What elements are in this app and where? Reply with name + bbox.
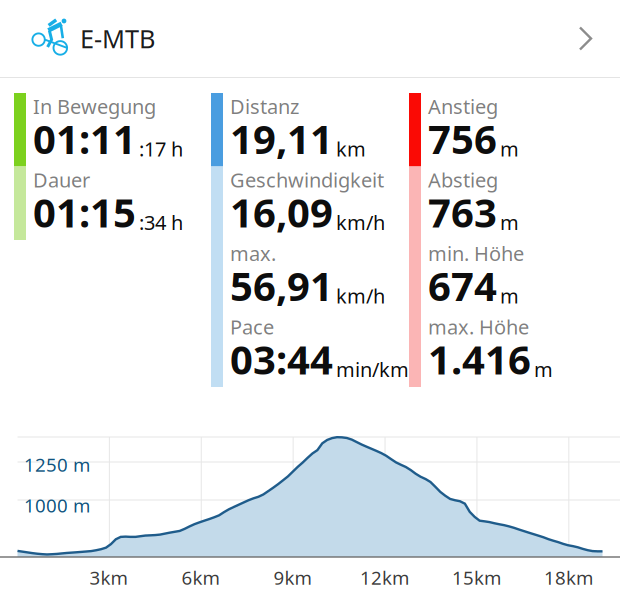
staticText: Anstieg <box>428 93 498 120</box>
button[interactable]: E-MTB <box>0 0 620 77</box>
staticText: 756 <box>428 112 497 165</box>
staticText: max. <box>230 240 276 267</box>
staticText: 01:11 <box>33 112 136 165</box>
staticText: Pace <box>230 313 274 340</box>
staticText: Abstieg <box>428 166 498 193</box>
staticText: 1250 m <box>24 452 90 477</box>
staticText: m <box>534 356 553 383</box>
staticText: Dauer <box>33 166 90 193</box>
staticText: 18km <box>544 565 593 590</box>
staticText: In Bewegung <box>33 93 156 120</box>
staticText: 01:15 <box>33 185 136 239</box>
staticText: 15km <box>452 565 501 590</box>
staticText: min. Höhe <box>428 240 524 267</box>
staticText: :34 h <box>139 209 183 236</box>
staticText: 1000 m <box>24 493 90 518</box>
staticText: km/h <box>336 283 385 309</box>
staticText: Geschwindigkeit <box>230 166 384 193</box>
staticText: 16,09 <box>230 185 333 239</box>
staticText: :17 h <box>139 136 183 162</box>
staticText: km <box>336 136 366 162</box>
staticText: 674 <box>428 259 497 312</box>
staticText: Distanz <box>230 93 299 120</box>
staticText: 03:44 <box>230 332 333 386</box>
staticText: 9km <box>273 565 311 590</box>
staticText: 3km <box>89 565 127 590</box>
staticText: 1.416 <box>428 332 531 386</box>
staticText: E-MTB <box>80 22 155 55</box>
staticText: 56,91 <box>230 259 333 312</box>
staticText: m <box>500 283 519 309</box>
staticText: 19,11 <box>230 112 333 165</box>
staticText: 6km <box>181 565 219 590</box>
staticText: km/h <box>336 209 385 236</box>
staticText: 763 <box>428 185 497 239</box>
staticText: max. Höhe <box>428 313 529 340</box>
staticText: min/km <box>336 356 409 383</box>
staticText: m <box>500 209 519 236</box>
staticText: 12km <box>360 565 409 590</box>
staticText: m <box>500 136 519 162</box>
